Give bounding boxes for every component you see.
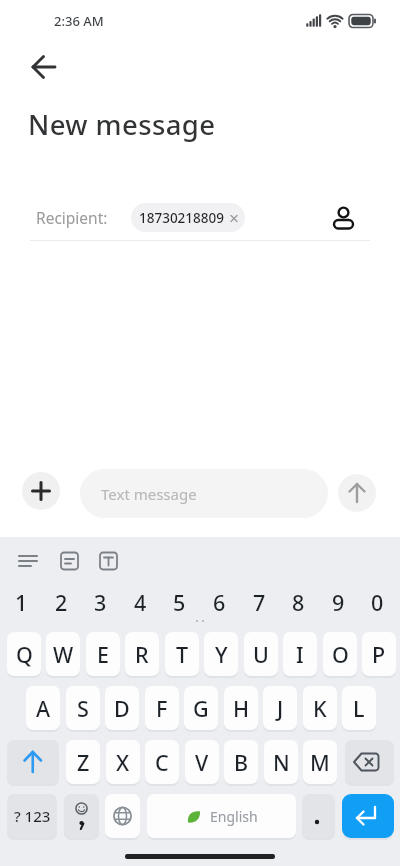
staticText: F — [156, 694, 168, 723]
staticText: 0 — [371, 588, 384, 617]
staticText: Q — [16, 640, 33, 669]
staticText: M — [310, 748, 330, 777]
button[interactable]: P — [362, 632, 396, 676]
staticText: G — [193, 694, 209, 723]
button[interactable]: V — [185, 740, 219, 784]
button[interactable]: K — [303, 686, 337, 730]
button[interactable] — [105, 794, 140, 838]
staticText: J — [277, 694, 284, 723]
button[interactable]: Z — [66, 740, 100, 784]
button[interactable] — [64, 794, 99, 838]
button[interactable]: 5 — [162, 582, 196, 622]
button[interactable]: G — [184, 686, 218, 730]
button[interactable]: M — [303, 740, 337, 784]
button[interactable]: B — [224, 740, 258, 784]
staticText: E — [97, 640, 109, 669]
button[interactable]: J — [263, 686, 297, 730]
staticText: New message — [28, 106, 216, 143]
staticText: English — [210, 807, 258, 826]
button[interactable]: 1 — [4, 582, 38, 622]
staticText: K — [313, 694, 327, 723]
button[interactable]: 3 — [83, 582, 117, 622]
button[interactable]: A — [26, 686, 60, 730]
button[interactable] — [53, 546, 85, 574]
button[interactable]: S — [66, 686, 100, 730]
staticText: R — [135, 640, 149, 669]
button[interactable] — [342, 794, 394, 838]
button[interactable]: W — [46, 632, 80, 676]
staticText: Text message — [101, 484, 197, 504]
button[interactable]: D — [105, 686, 139, 730]
button[interactable]: English — [147, 794, 296, 838]
button[interactable]: F — [145, 686, 179, 730]
button[interactable] — [338, 474, 376, 512]
staticText: B — [234, 748, 249, 777]
staticText: 9 — [332, 588, 345, 617]
staticText: Y — [215, 640, 228, 669]
button[interactable]: T — [165, 632, 199, 676]
button[interactable]: ? 123 — [7, 794, 57, 838]
staticText: H — [233, 694, 250, 723]
staticText: 4 — [134, 588, 147, 617]
button[interactable]: 8 — [281, 582, 315, 622]
button[interactable] — [332, 201, 358, 233]
button[interactable]: 2 — [44, 582, 78, 622]
staticText: I — [296, 640, 304, 669]
staticText: 5 — [173, 588, 186, 617]
staticText: U — [253, 640, 269, 669]
button[interactable]: L — [342, 686, 376, 730]
button[interactable]: 6 — [202, 582, 236, 622]
staticText: X — [116, 748, 130, 777]
staticText: 18730218809 — [139, 209, 224, 227]
button[interactable]: Y — [204, 632, 238, 676]
button[interactable]: X — [106, 740, 140, 784]
button[interactable]: N — [264, 740, 298, 784]
button[interactable]: R — [125, 632, 159, 676]
button[interactable] — [345, 740, 394, 784]
staticText: S — [77, 694, 89, 723]
button[interactable] — [7, 740, 59, 784]
staticText: 2:36 AM — [54, 12, 104, 30]
button[interactable]: Text message — [80, 469, 328, 518]
button[interactable] — [302, 794, 335, 838]
button[interactable] — [92, 546, 124, 574]
staticText: Recipient: — [36, 207, 108, 228]
button[interactable] — [12, 546, 44, 574]
button[interactable]: I — [283, 632, 317, 676]
button[interactable]: C — [145, 740, 179, 784]
button[interactable]: 4 — [123, 582, 157, 622]
staticText: P — [372, 640, 386, 669]
staticText: W — [53, 640, 74, 669]
button[interactable] — [22, 472, 60, 510]
button[interactable]: Q — [7, 632, 41, 676]
staticText: 7 — [253, 588, 266, 617]
staticText: 2 — [55, 588, 68, 617]
staticText: 1 — [15, 588, 28, 617]
staticText: Z — [77, 748, 90, 777]
staticText: A — [36, 694, 51, 723]
staticText: 8 — [292, 588, 305, 617]
button[interactable]: 7 — [242, 582, 276, 622]
staticText: T — [176, 640, 189, 669]
button[interactable]: 18730218809 — [131, 203, 245, 232]
staticText: 3 — [94, 588, 107, 617]
button[interactable]: 9 — [321, 582, 355, 622]
staticText: V — [195, 748, 209, 777]
staticText: 6 — [213, 588, 226, 617]
button[interactable]: 0 — [360, 582, 394, 622]
button[interactable]: H — [224, 686, 258, 730]
button[interactable]: O — [323, 632, 357, 676]
staticText: L — [353, 694, 365, 723]
button[interactable] — [26, 52, 62, 82]
staticText: D — [114, 694, 130, 723]
button[interactable]: U — [244, 632, 278, 676]
staticText: ? 123 — [14, 806, 51, 826]
staticText: C — [155, 748, 169, 777]
staticText: N — [273, 748, 290, 777]
staticText: O — [332, 640, 349, 669]
button[interactable]: E — [86, 632, 120, 676]
